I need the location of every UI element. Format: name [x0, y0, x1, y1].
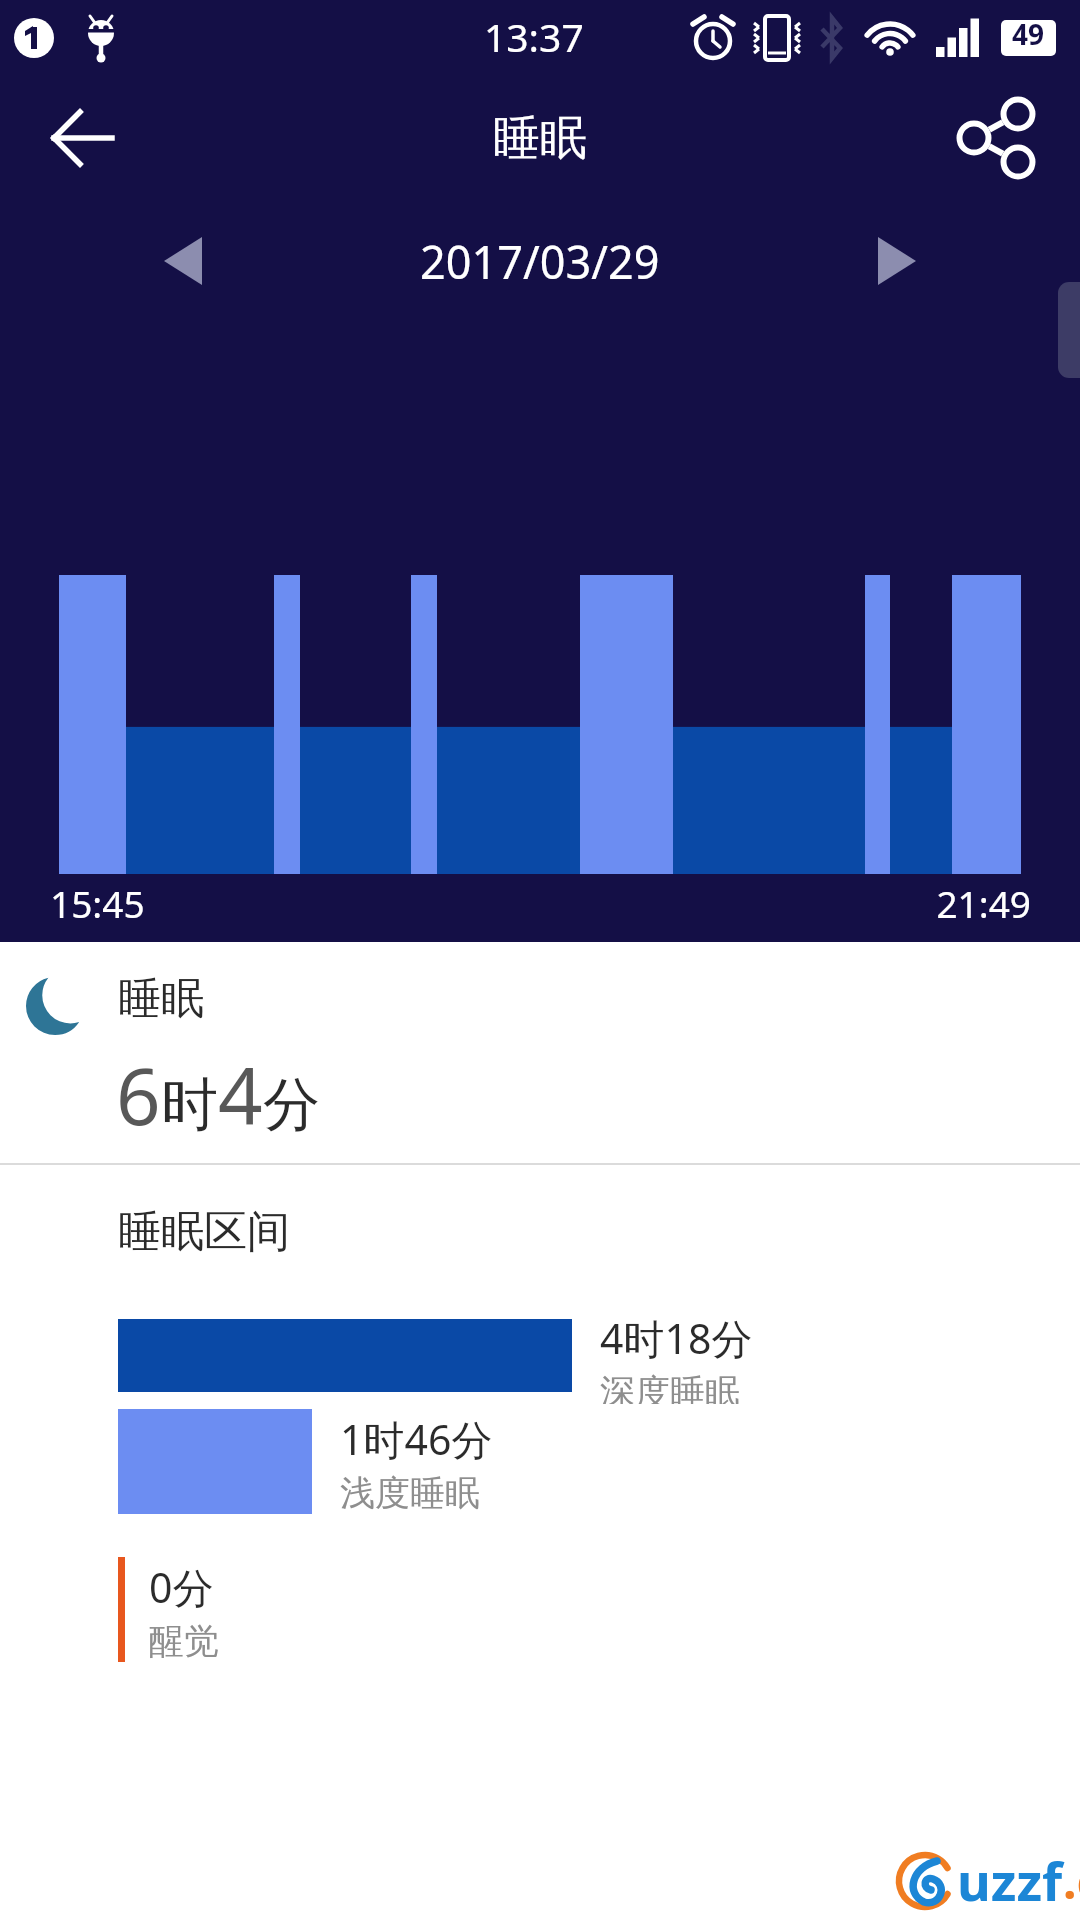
- staticText: 浅度睡眠: [340, 1471, 480, 1515]
- button[interactable]: Next day: [846, 213, 942, 309]
- staticText: 1时46分: [340, 1411, 493, 1467]
- button[interactable]: Previous day: [138, 213, 234, 309]
- staticText: .com: [1063, 1848, 1080, 1913]
- button[interactable]: Share: [938, 80, 1054, 196]
- staticText: 睡眠: [118, 972, 204, 1026]
- button[interactable]: 0分: [0, 1554, 1080, 1664]
- button[interactable]: 1时46分: [0, 1406, 1080, 1516]
- staticText: 49: [1012, 15, 1045, 53]
- staticText: 21:49: [845, 878, 1031, 928]
- staticText: 睡眠区间: [118, 1205, 290, 1259]
- staticText: 4: [218, 1042, 263, 1148]
- staticText: 6: [116, 1042, 161, 1148]
- staticText: 睡眠: [493, 109, 587, 168]
- staticText: 2017/03/29: [420, 231, 660, 292]
- staticText: 15:45: [50, 878, 145, 928]
- button[interactable]: 睡眠: [0, 942, 1080, 1163]
- staticText: 深度睡眠: [600, 1370, 740, 1404]
- staticText: 0分: [149, 1559, 214, 1615]
- staticText: 4时18分: [600, 1310, 753, 1366]
- staticText: 分: [263, 1069, 320, 1141]
- staticText: 醒觉: [149, 1619, 219, 1663]
- button[interactable]: 4时18分: [0, 1310, 1080, 1400]
- staticText: 时: [161, 1069, 218, 1141]
- staticText: 13:37: [484, 10, 584, 63]
- staticText: uzzf: [957, 1845, 1063, 1916]
- button[interactable]: Back: [30, 80, 146, 196]
